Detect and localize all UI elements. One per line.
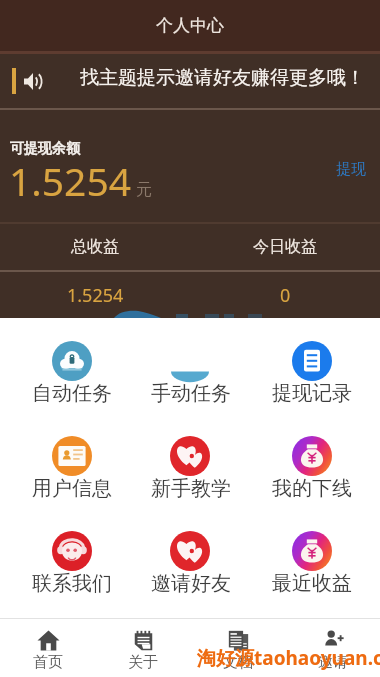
staticText: 新手教学 — [151, 476, 231, 501]
staticText: 关于 — [128, 653, 158, 672]
staticText: 邀请 — [318, 653, 348, 672]
staticText: 可提现余额 — [10, 140, 80, 158]
staticText: 元 — [136, 180, 152, 200]
button[interactable]: 首页 — [0, 619, 95, 677]
button[interactable]: 邀请 — [285, 619, 380, 677]
button[interactable]: 联系我们 — [0, 508, 127, 603]
button[interactable]: 自动任务 — [0, 318, 127, 413]
staticText: 淘好源taohaoyuan.com — [197, 645, 380, 671]
staticText: 文档 — [223, 653, 253, 672]
staticText: 自动任务 — [32, 381, 112, 406]
button[interactable]: 我的下线 — [254, 413, 380, 508]
button[interactable]: 关于 — [95, 619, 190, 677]
other: Announcement — [24, 72, 42, 91]
staticText: 最近收益 — [272, 571, 352, 596]
staticText: 提现记录 — [272, 381, 352, 406]
button[interactable]: 用户信息 — [0, 413, 127, 508]
staticText: 总收益 — [71, 237, 119, 257]
staticText: 邀请好友 — [151, 571, 231, 596]
staticText: 手动任务 — [151, 381, 231, 406]
staticText: 联系我们 — [32, 571, 112, 596]
staticText: 今日收益 — [253, 237, 317, 257]
button[interactable]: 最近收益 — [254, 508, 380, 603]
staticText: 我的下线 — [272, 476, 352, 501]
staticText: 提现 — [336, 160, 366, 179]
button[interactable]: 邀请好友 — [127, 508, 254, 603]
staticText: 1.5254 — [67, 283, 124, 308]
button[interactable]: 提现记录 — [254, 318, 380, 413]
button[interactable]: 手动任务 — [127, 318, 254, 413]
staticText: 首页 — [33, 653, 63, 672]
staticText: 用户信息 — [32, 476, 112, 501]
staticText: 个人中心 — [156, 15, 224, 36]
staticText: 0 — [280, 283, 291, 308]
staticText: 1.5254 — [9, 154, 131, 207]
button[interactable]: 新手教学 — [127, 413, 254, 508]
staticText: 找主题提示邀请好友赚得更多哦！ — [80, 66, 365, 90]
button[interactable]: 文档 — [190, 619, 285, 677]
button[interactable]: 提现 — [334, 158, 368, 181]
